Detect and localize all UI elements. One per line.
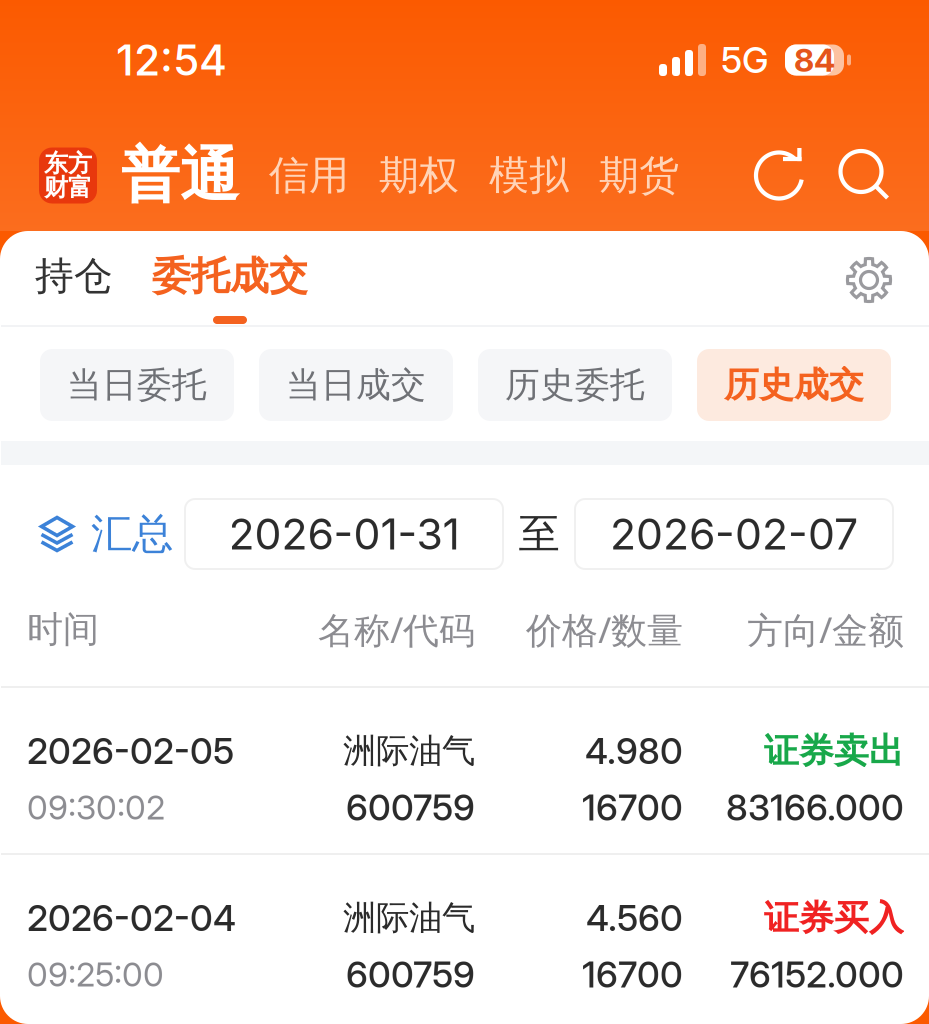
button[interactable]: 2026-02-05 — [1, 688, 929, 853]
button[interactable]: 持仓 — [18, 250, 130, 302]
button[interactable]: 2026-01-31 — [185, 499, 503, 569]
button[interactable]: Settings — [845, 256, 893, 304]
staticText: 洲际油气 — [343, 897, 475, 939]
staticText: 12:54 — [116, 34, 227, 86]
button[interactable]: 当日委托 — [40, 349, 234, 421]
staticText: 期权 — [379, 150, 459, 201]
staticText: 名称/代码 — [318, 605, 475, 654]
staticText: 普通 — [121, 138, 239, 212]
staticText: 84 — [794, 41, 835, 79]
button[interactable]: 2026-02-07 — [575, 499, 893, 569]
staticText: 600759 — [346, 786, 475, 829]
staticText: 76152.000 — [730, 953, 904, 996]
staticText: 财富 — [44, 172, 92, 203]
button[interactable]: Refresh — [753, 147, 809, 203]
staticText: 模拟 — [489, 150, 569, 201]
staticText: 16700 — [582, 786, 683, 829]
button[interactable]: 历史委托 — [478, 349, 672, 421]
staticText: 当日成交 — [286, 363, 426, 407]
staticText: 委托成交 — [152, 252, 308, 300]
staticText: 信用 — [269, 150, 349, 201]
staticText: 2026-02-04 — [27, 896, 236, 940]
staticText: 时间 — [27, 607, 99, 652]
button[interactable]: 当日成交 — [259, 349, 453, 421]
staticText: 4.980 — [585, 729, 683, 773]
staticText: 持仓 — [35, 252, 113, 300]
staticText: 洲际油气 — [343, 730, 475, 772]
staticText: 历史委托 — [505, 363, 645, 407]
staticText: 4.560 — [586, 896, 683, 940]
staticText: 2026-02-05 — [27, 729, 234, 773]
staticText: 证券卖出 — [764, 729, 904, 773]
staticText: 83166.000 — [726, 786, 904, 829]
staticText: 期货 — [599, 150, 679, 201]
staticText: 2026-01-31 — [228, 508, 459, 560]
button[interactable]: 2026-02-04 — [1, 855, 929, 1020]
staticText: 5G — [721, 38, 769, 82]
staticText: 证券买入 — [764, 896, 904, 940]
staticText: 2026-02-07 — [610, 508, 858, 560]
staticText: 东方 — [44, 148, 92, 179]
staticText: 600759 — [346, 953, 475, 996]
staticText: 价格/数量 — [526, 605, 683, 654]
staticText: 09:25:00 — [27, 954, 164, 995]
staticText: 至 — [518, 508, 559, 560]
staticText: 汇总 — [91, 508, 173, 560]
button[interactable]: 委托成交 — [130, 250, 330, 324]
staticText: 方向/金额 — [747, 605, 904, 654]
staticText: 当日委托 — [67, 363, 207, 407]
staticText: 16700 — [582, 953, 683, 996]
button[interactable]: 汇总 — [39, 499, 173, 569]
button[interactable]: Search — [837, 147, 893, 203]
button[interactable]: 历史成交 — [697, 349, 891, 421]
staticText: 09:30:02 — [27, 787, 165, 828]
staticText: 历史成交 — [724, 363, 864, 407]
